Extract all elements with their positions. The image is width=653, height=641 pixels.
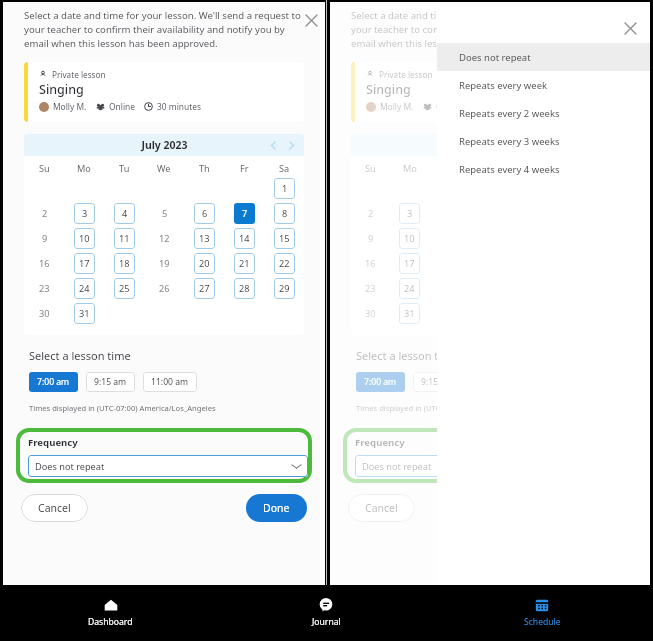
staticText: Singing bbox=[366, 81, 411, 98]
button[interactable]: 3 bbox=[74, 203, 95, 224]
button[interactable]: 22 bbox=[274, 253, 295, 274]
button[interactable]: 15 bbox=[274, 228, 295, 249]
staticText: 5 bbox=[162, 207, 168, 220]
button[interactable]: Repeats every week bbox=[437, 71, 650, 99]
button[interactable]: 17 bbox=[74, 253, 95, 274]
button[interactable]: 27 bbox=[194, 278, 215, 299]
button[interactable]: Done bbox=[246, 494, 307, 522]
staticText: Select a lesson time bbox=[29, 348, 131, 363]
button[interactable]: 20 bbox=[194, 253, 215, 274]
staticText: 27 bbox=[199, 282, 210, 295]
staticText: Fr bbox=[240, 162, 249, 175]
button[interactable]: 7:00 am bbox=[356, 372, 405, 392]
button[interactable]: 28 bbox=[234, 278, 255, 299]
staticText: 4 bbox=[122, 207, 128, 220]
staticText: 9 bbox=[368, 232, 374, 245]
button[interactable]: Does not repeat bbox=[355, 455, 635, 477]
button[interactable]: 14 bbox=[234, 228, 255, 249]
button[interactable]: Close bbox=[622, 20, 638, 36]
staticText: Repeats every 3 weeks bbox=[459, 135, 560, 148]
button[interactable]: 31 bbox=[74, 303, 95, 324]
button[interactable]: 25 bbox=[114, 278, 135, 299]
button[interactable]: Repeats every 3 weeks bbox=[437, 127, 650, 155]
staticText: Online bbox=[436, 101, 462, 112]
staticText: Mo bbox=[403, 162, 417, 175]
button[interactable]: Close bbox=[628, 12, 644, 28]
staticText: 7 bbox=[242, 207, 248, 220]
button[interactable]: Journal bbox=[218, 586, 434, 640]
button[interactable]: 17 bbox=[399, 253, 420, 274]
button[interactable]: 24 bbox=[399, 278, 420, 299]
staticText: Su bbox=[365, 162, 376, 175]
button[interactable]: Close bbox=[303, 12, 319, 28]
button[interactable]: 24 bbox=[74, 278, 95, 299]
button[interactable]: Repeats every 2 weeks bbox=[437, 99, 650, 127]
staticText: 30 bbox=[365, 307, 376, 320]
button[interactable]: 11:00 am bbox=[143, 372, 197, 392]
staticText: Repeats every 2 weeks bbox=[459, 107, 560, 120]
staticText: 23 bbox=[365, 282, 376, 295]
button[interactable]: 8 bbox=[274, 203, 295, 224]
button[interactable]: 13 bbox=[194, 228, 215, 249]
staticText: Cancel bbox=[38, 501, 71, 515]
button[interactable]: 7 bbox=[234, 203, 255, 224]
button[interactable]: 3 bbox=[399, 203, 420, 224]
button[interactable]: 10 bbox=[399, 228, 420, 249]
button[interactable]: Schedule bbox=[434, 586, 650, 640]
button[interactable]: 10 bbox=[74, 228, 95, 249]
button[interactable]: 29 bbox=[274, 278, 295, 299]
button[interactable]: 7:00 am bbox=[29, 372, 78, 392]
staticText: 14 bbox=[239, 232, 250, 245]
button[interactable]: 18 bbox=[114, 253, 135, 274]
staticText: 22 bbox=[279, 257, 290, 270]
staticText: 26 bbox=[159, 282, 170, 295]
button[interactable]: 4 bbox=[114, 203, 135, 224]
staticText: Th bbox=[199, 162, 210, 175]
staticText: Molly M. bbox=[380, 101, 414, 112]
button[interactable]: Does not repeat bbox=[28, 455, 308, 477]
staticText: 20 bbox=[199, 257, 210, 270]
button[interactable]: 9:15 am bbox=[86, 372, 135, 392]
button[interactable]: 6 bbox=[194, 203, 215, 224]
staticText: Done bbox=[263, 501, 290, 515]
button[interactable]: Cancel bbox=[21, 494, 88, 522]
staticText: 6 bbox=[202, 207, 208, 220]
button[interactable]: 21 bbox=[234, 253, 255, 274]
button[interactable]: 1 bbox=[274, 178, 295, 199]
button[interactable]: 9:15 am bbox=[413, 372, 462, 392]
button[interactable]: Next month bbox=[286, 140, 297, 151]
button[interactable]: Cancel bbox=[348, 494, 415, 522]
button[interactable]: Repeats every 4 weeks bbox=[437, 155, 650, 183]
button[interactable]: 31 bbox=[399, 303, 420, 324]
button[interactable]: Does not repeat bbox=[437, 43, 650, 71]
button[interactable]: Dashboard bbox=[3, 586, 218, 640]
button[interactable]: 11 bbox=[114, 228, 135, 249]
staticText: Does not repeat bbox=[362, 460, 619, 473]
button[interactable]: Previous month bbox=[268, 140, 279, 151]
